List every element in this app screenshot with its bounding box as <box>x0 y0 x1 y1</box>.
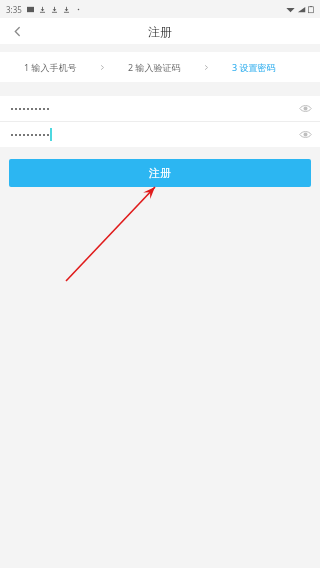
staticText: 注册 <box>148 24 172 39</box>
staticText: 3 设置密码 <box>232 61 276 73</box>
button[interactable]: Toggle password visibility <box>0 122 320 147</box>
button[interactable]: 注册 <box>9 159 311 187</box>
button[interactable]: Back <box>0 18 34 44</box>
staticText: 2 输入验证码 <box>128 61 181 73</box>
staticText: 1 输入手机号 <box>24 61 77 73</box>
button[interactable]: Toggle password visibility <box>290 96 320 121</box>
staticText: 注册 <box>149 166 171 180</box>
button[interactable]: Toggle password visibility <box>0 96 320 121</box>
button[interactable]: 2 输入验证码 <box>128 61 181 73</box>
button[interactable]: Toggle password visibility <box>290 122 320 147</box>
button[interactable]: 1 输入手机号 <box>24 61 77 73</box>
staticText: 3:35 <box>6 4 22 15</box>
button[interactable]: 3 设置密码 <box>232 61 276 73</box>
